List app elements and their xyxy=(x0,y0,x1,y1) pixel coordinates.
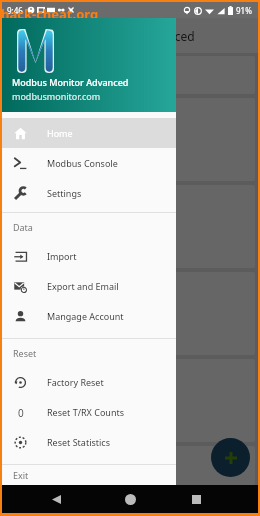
button[interactable]: Add xyxy=(211,438,250,477)
staticText: Settings xyxy=(47,187,82,199)
button[interactable]: Export and Email xyxy=(2,271,176,301)
button[interactable]: (+91)-1234567890 xyxy=(5,185,255,268)
staticText: hack-cheat.org xyxy=(1,5,99,21)
button[interactable]: Settings xyxy=(2,178,176,208)
button[interactable]: Factory Reset xyxy=(2,367,176,397)
staticText: C2:I1:G1.0+0.0 xyxy=(12,478,60,485)
button[interactable]: (+91)-1234567890 xyxy=(5,98,255,181)
staticText: 91% xyxy=(236,5,252,16)
staticText: Import xyxy=(47,250,77,262)
staticText: C2:I1:G1.0+0.0 xyxy=(12,130,60,140)
staticText: 0 xyxy=(18,406,24,419)
staticText: Exit xyxy=(13,469,29,481)
staticText: 9:46 xyxy=(7,5,23,16)
button[interactable]: Modbus Console xyxy=(2,148,176,178)
staticText: (+91)-1234567890 xyxy=(12,198,121,216)
staticText: modbusmonitor.com xyxy=(12,90,101,102)
staticText: C2:I1:G1.0+0.0 xyxy=(12,304,60,314)
staticText: (+91)-1234567890 xyxy=(12,111,121,129)
staticText: Export and Email xyxy=(47,280,119,292)
staticText: Home xyxy=(47,127,73,139)
staticText: (91)-12345 xyxy=(12,285,77,303)
button[interactable]: Mangage Account xyxy=(2,301,176,331)
staticText: Reset T/RX Counts xyxy=(47,406,125,418)
button[interactable]: Home xyxy=(2,118,176,148)
button[interactable]: 0 xyxy=(2,397,176,427)
button[interactable]: Import xyxy=(2,241,176,271)
staticText: Modbus Monitor Advanced xyxy=(12,76,129,88)
staticText: Mangage Account xyxy=(47,310,124,322)
button[interactable] xyxy=(5,56,255,94)
staticText: (+91)-1234567890 xyxy=(12,459,121,477)
button[interactable]: (+91)-1234567890 xyxy=(5,446,255,485)
staticText: Modbus Monitor Advanced xyxy=(42,28,195,44)
staticText: Factory Reset xyxy=(47,376,104,388)
staticText: (+91)-1234567890 xyxy=(12,372,121,390)
staticText: Data xyxy=(13,221,33,233)
staticText: Reset Statistics xyxy=(47,436,110,448)
button[interactable]: Reset Statistics xyxy=(2,427,176,457)
button[interactable]: Home xyxy=(120,489,140,509)
button[interactable]: (91)-12345 xyxy=(5,272,255,355)
button[interactable]: Back xyxy=(46,489,66,509)
staticText: Modbus Console xyxy=(47,157,118,169)
button[interactable]: Recents xyxy=(186,489,206,509)
button[interactable]: (+91)-1234567890 xyxy=(5,359,255,442)
staticText: Reset xyxy=(13,347,37,359)
staticText: C2:I1:G1.0+0.0 xyxy=(12,217,60,227)
